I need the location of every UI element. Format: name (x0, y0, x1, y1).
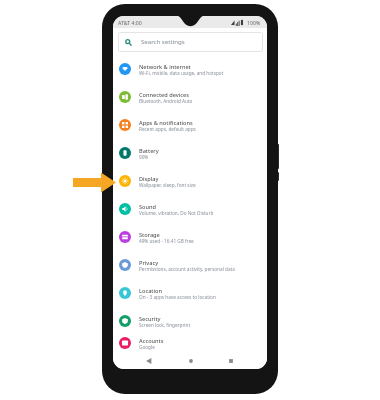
staticText: Sound (139, 203, 156, 211)
button[interactable]: Connected devices (113, 83, 267, 111)
button[interactable]: Home (182, 354, 200, 368)
staticText: 100% (247, 19, 261, 26)
staticText: Network & internet (139, 63, 191, 71)
button[interactable]: Security (113, 307, 267, 335)
button[interactable]: Battery (113, 139, 267, 167)
staticText: Apps & notifications (139, 119, 193, 127)
staticText: Location (139, 287, 162, 295)
button[interactable]: Storage (113, 223, 267, 251)
staticText: Volume, vibration, Do Not Disturb (139, 210, 214, 216)
staticText: Storage (139, 231, 160, 239)
staticText: AT&T 4:00 (118, 19, 142, 26)
staticText: Battery (139, 147, 159, 155)
staticText: Privacy (139, 259, 159, 267)
staticText: Display (139, 175, 159, 183)
button[interactable]: Display (113, 167, 267, 195)
button[interactable]: Accounts (113, 335, 267, 351)
staticText: 90% (139, 154, 149, 160)
button[interactable]: Recent apps (222, 354, 240, 368)
staticText: On - 3 apps have access to location (139, 294, 216, 300)
staticText: Security (139, 315, 161, 323)
button[interactable]: Apps & notifications (113, 111, 267, 139)
staticText: Screen lock, fingerprint (139, 322, 191, 328)
staticText: Accounts (139, 337, 164, 345)
staticText: Recent apps, default apps (139, 126, 196, 132)
staticText: Wallpaper, sleep, font size (139, 182, 196, 188)
staticText: Bluetooth, Android Auto (139, 98, 193, 104)
staticText: Connected devices (139, 91, 189, 99)
staticText: Google (139, 344, 155, 350)
staticText: 49% used - 16.41 GB free (139, 238, 194, 244)
button[interactable]: Privacy (113, 251, 267, 279)
button[interactable]: Search settings (118, 32, 263, 52)
button[interactable]: Sound (113, 195, 267, 223)
staticText: Search settings (141, 37, 185, 45)
staticText: Wi-Fi, mobile, data usage, and hotspot (139, 70, 224, 76)
button[interactable]: Back (140, 354, 158, 368)
button[interactable]: Network & internet (113, 55, 267, 83)
button[interactable]: Location (113, 279, 267, 307)
staticText: Permissions, account activity, personal … (139, 266, 235, 272)
